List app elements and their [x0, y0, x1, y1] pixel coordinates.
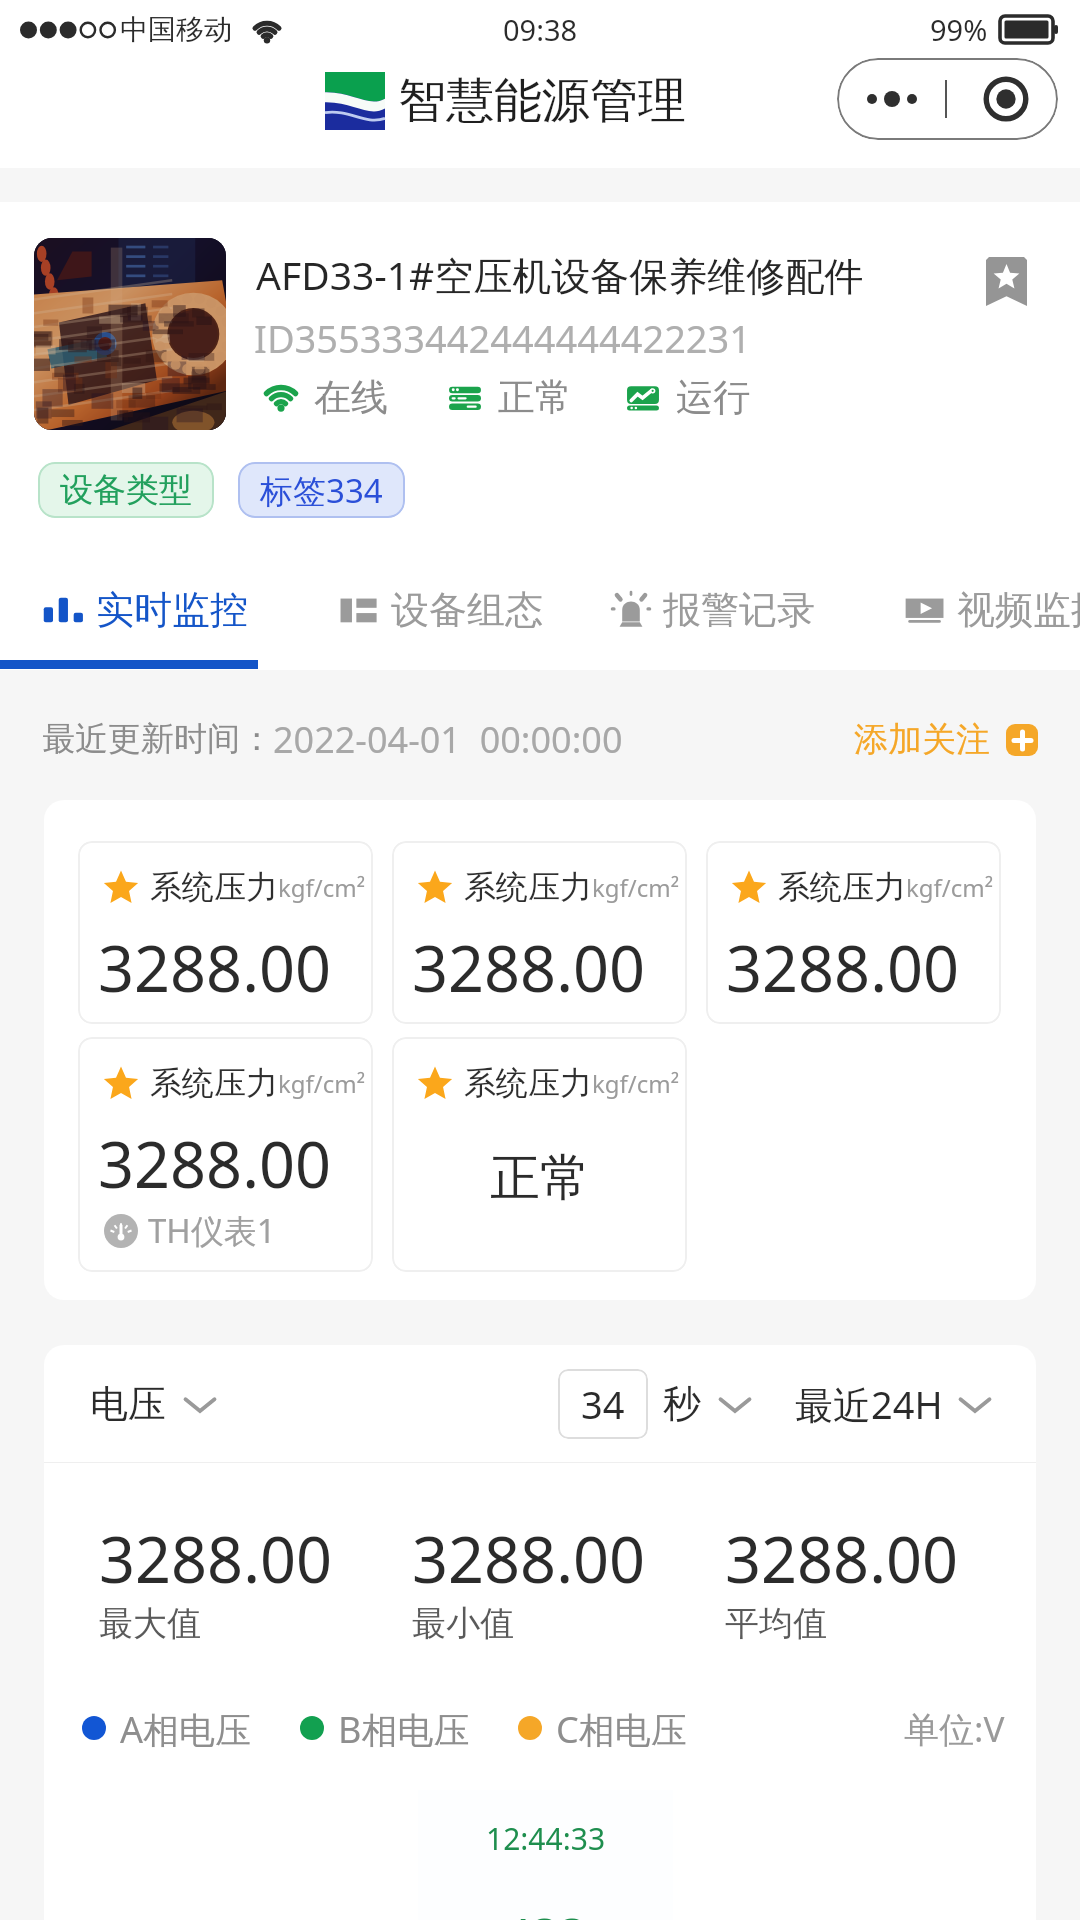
- staticText: 99%: [930, 10, 988, 49]
- staticText: kgf/cm²: [592, 871, 680, 904]
- button[interactable]: Bookmark: [986, 257, 1027, 306]
- button[interactable]: 标签334: [238, 462, 405, 518]
- staticText: 433: [504, 1902, 587, 1920]
- button[interactable]: 秒: [663, 1380, 751, 1428]
- staticText: ID355333442444444422231: [254, 312, 752, 364]
- staticText: 最近更新时间：: [42, 718, 273, 760]
- staticText: 最小值: [412, 1602, 514, 1645]
- button[interactable]: 报警记录: [609, 586, 815, 634]
- staticText: 平均值: [725, 1602, 827, 1645]
- staticText: 系统压力: [464, 1063, 592, 1103]
- staticText: 3288.00: [412, 925, 646, 1011]
- button[interactable]: 运行: [622, 374, 750, 421]
- staticText: TH仪表1: [148, 1208, 276, 1253]
- button[interactable]: 最近24H: [795, 1378, 991, 1430]
- staticText: 系统压力: [150, 867, 278, 907]
- button[interactable]: 视频监控: [903, 586, 1080, 634]
- staticText: 系统压力: [464, 867, 592, 907]
- button[interactable]: 系统压力: [706, 841, 1001, 1024]
- button[interactable]: 系统压力: [392, 1037, 687, 1272]
- staticText: 视频监控: [957, 586, 1080, 634]
- staticText: 系统压力: [778, 867, 906, 907]
- button[interactable]: 实时监控: [42, 586, 248, 634]
- staticText: 正常: [490, 1147, 590, 1210]
- staticText: 3288.00: [98, 1121, 332, 1207]
- staticText: 3288.00: [725, 1516, 959, 1602]
- button[interactable]: 系统压力: [78, 841, 373, 1024]
- staticText: 最近24H: [795, 1378, 943, 1430]
- staticText: kgf/cm²: [592, 1067, 680, 1100]
- button[interactable]: More options: [837, 58, 1058, 140]
- staticText: 标签334: [260, 468, 383, 513]
- staticText: 智慧能源管理: [398, 71, 686, 131]
- staticText: 中国移动: [120, 12, 232, 47]
- staticText: 3288.00: [99, 1516, 333, 1602]
- button[interactable]: 添加关注: [854, 718, 1038, 761]
- staticText: 报警记录: [663, 586, 815, 634]
- staticText: 正常: [498, 374, 572, 421]
- staticText: C相电压: [556, 1705, 687, 1751]
- staticText: kgf/cm²: [278, 871, 366, 904]
- staticText: 2022-04-01 00:00:00: [273, 715, 623, 764]
- staticText: AFD33-1#空压机设备保养维修配件: [256, 248, 864, 301]
- button[interactable]: 电压: [90, 1380, 216, 1428]
- staticText: 最大值: [99, 1602, 201, 1645]
- staticText: 单位:V: [904, 1705, 1005, 1751]
- staticText: 34: [581, 1378, 625, 1430]
- button[interactable]: C相电压: [518, 1705, 687, 1751]
- staticText: 3288.00: [98, 925, 332, 1011]
- button[interactable]: 34: [558, 1369, 648, 1439]
- staticText: 12:44:33: [486, 1818, 606, 1859]
- staticText: 添加关注: [854, 718, 990, 761]
- staticText: 设备类型: [60, 469, 192, 511]
- button[interactable]: 系统压力: [392, 841, 687, 1024]
- button[interactable]: 系统压力: [78, 1037, 373, 1272]
- staticText: 运行: [676, 374, 750, 421]
- staticText: 秒: [663, 1380, 701, 1428]
- button[interactable]: 设备类型: [38, 462, 214, 518]
- staticText: 设备组态: [391, 586, 543, 634]
- staticText: 系统压力: [150, 1063, 278, 1103]
- staticText: 实时监控: [96, 586, 248, 634]
- staticText: 在线: [314, 374, 388, 421]
- staticText: B相电压: [338, 1705, 470, 1751]
- staticText: 09:38: [503, 10, 578, 49]
- staticText: 电压: [90, 1380, 166, 1428]
- staticText: A相电压: [120, 1705, 252, 1751]
- staticText: kgf/cm²: [906, 871, 994, 904]
- button[interactable]: 设备组态: [337, 586, 543, 634]
- staticText: 3288.00: [726, 925, 960, 1011]
- staticText: kgf/cm²: [278, 1067, 366, 1100]
- staticText: 3288.00: [412, 1516, 646, 1602]
- button[interactable]: A相电压: [82, 1705, 252, 1751]
- button[interactable]: 在线: [260, 374, 388, 421]
- button[interactable]: 正常: [444, 374, 572, 421]
- button[interactable]: B相电压: [300, 1705, 470, 1751]
